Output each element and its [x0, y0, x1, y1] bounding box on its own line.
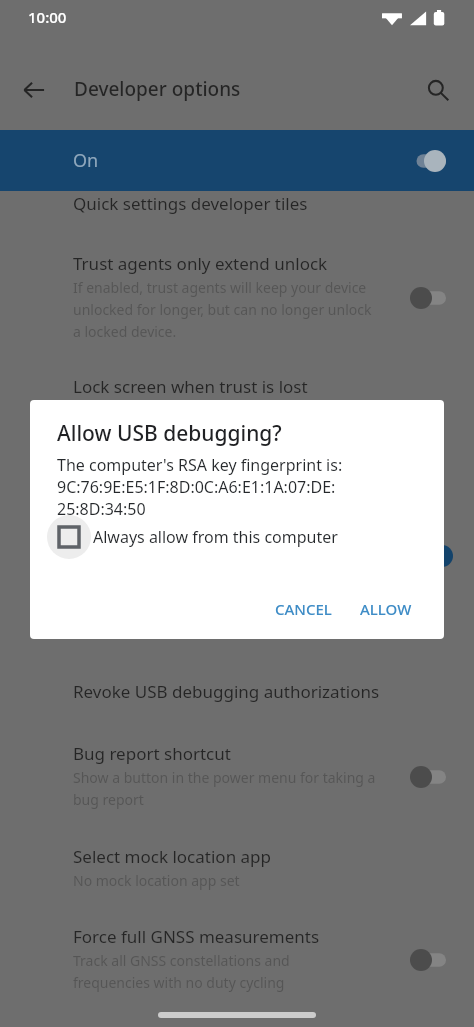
staticText: Always allow from this computer	[93, 526, 338, 548]
staticText: Allow USB debugging?	[57, 419, 282, 448]
staticText: Lock screen when trust is lost	[73, 375, 308, 398]
button[interactable]: ALLOW	[350, 591, 422, 627]
staticText: Bug report shortcut	[73, 742, 231, 765]
staticText: Developer options	[74, 76, 241, 102]
staticText: Revoke USB debugging authorizations	[73, 680, 380, 703]
staticText: Trust agents only extend unlock	[73, 252, 328, 275]
staticText: Show a button in the power menu for taki…	[73, 768, 376, 809]
button[interactable]: Revoke USB debugging authorizations	[0, 680, 474, 703]
staticText: No mock location app set	[73, 871, 240, 890]
button[interactable]: Trust agents only extend unlock	[0, 252, 474, 341]
staticText: 10:00	[28, 7, 67, 27]
button[interactable]: Toggle Trust agents only extend unlock	[410, 287, 446, 309]
button[interactable]: Toggle Bug report shortcut	[410, 766, 446, 788]
button[interactable]: Bug report shortcut	[0, 742, 474, 809]
button[interactable]: Toggle Force full GNSS measurements	[410, 949, 446, 971]
staticText: On	[73, 148, 99, 173]
button[interactable]: Back	[14, 70, 54, 110]
staticText: Track all GNSS constellations and freque…	[73, 951, 290, 992]
staticText: Force full GNSS measurements	[73, 925, 320, 948]
staticText: ALLOW	[360, 599, 412, 619]
button[interactable]: Always allow from this computer	[45, 513, 338, 561]
staticText: If enabled, trust agents will keep your …	[73, 278, 372, 341]
button[interactable]: On	[0, 130, 474, 191]
staticText: CANCEL	[275, 599, 332, 619]
button[interactable]: Force full GNSS measurements	[0, 925, 474, 992]
staticText: Select mock location app	[73, 845, 271, 868]
button[interactable]: Lock screen when trust is lost	[0, 375, 474, 398]
button[interactable]: CANCEL	[265, 591, 342, 627]
staticText: Quick settings developer tiles	[73, 192, 308, 215]
button[interactable]: Select mock location app	[0, 845, 474, 890]
button[interactable]: Quick settings developer tiles	[0, 192, 474, 215]
staticText: The computer's RSA key fingerprint is: 9…	[57, 454, 343, 520]
button[interactable]: Search	[418, 70, 458, 110]
